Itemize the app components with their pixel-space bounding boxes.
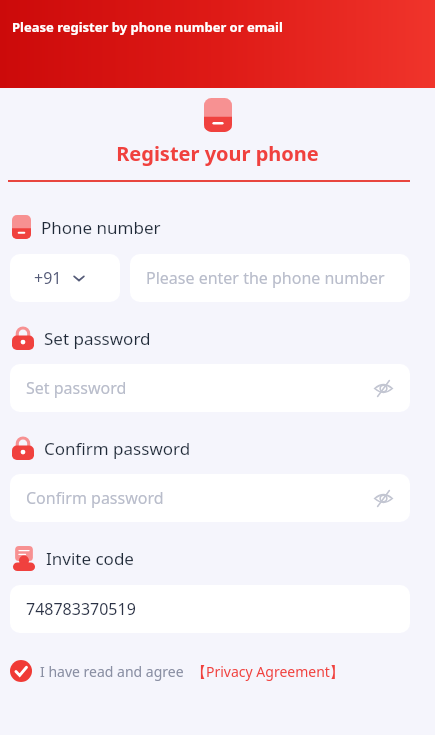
staticText: Set password (26, 377, 127, 399)
staticText: Confirm password (44, 437, 191, 460)
button[interactable]: 748783370519 (10, 585, 410, 633)
staticText: Register your phone (0, 140, 435, 167)
staticText: Confirm password (26, 487, 164, 509)
staticText: +91 (34, 267, 62, 289)
button[interactable]: Confirm password (10, 474, 410, 522)
button[interactable]: I have read and agree (10, 660, 423, 682)
button[interactable]: 【Privacy Agreement】 (192, 662, 344, 681)
staticText: Invite code (46, 547, 134, 570)
staticText: I have read and agree (40, 662, 184, 681)
button[interactable]: Show password (370, 375, 396, 401)
button[interactable]: Set password (10, 364, 410, 412)
button[interactable]: Please enter the phone number (130, 254, 410, 302)
staticText: Please register by phone number or email (12, 18, 283, 36)
staticText: 748783370519 (26, 598, 136, 620)
staticText: Set password (44, 327, 151, 350)
button[interactable]: Show password (370, 485, 396, 511)
staticText: Phone number (41, 216, 161, 239)
staticText: Please enter the phone number (146, 267, 385, 289)
button[interactable]: +91 (10, 254, 120, 302)
